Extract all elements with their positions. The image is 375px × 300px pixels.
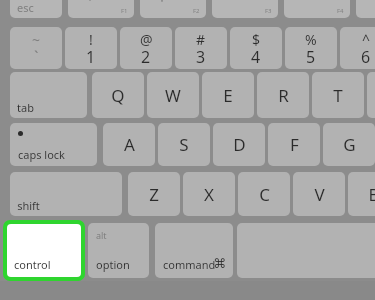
button[interactable]: V [293, 172, 345, 216]
staticText: shift [17, 198, 40, 213]
button[interactable]: F3 [212, 0, 278, 18]
button[interactable]: Shift [10, 172, 122, 216]
button[interactable]: S [158, 123, 210, 166]
staticText: ! [89, 30, 93, 49]
button[interactable]: esc [10, 0, 62, 18]
button[interactable]: X [183, 172, 235, 216]
button[interactable]: 2 key [120, 27, 172, 69]
staticText: $ [252, 30, 261, 49]
staticText: X [204, 183, 214, 206]
button[interactable]: E [202, 72, 254, 118]
button[interactable]: A [103, 123, 155, 166]
button[interactable]: 5 key [285, 27, 337, 69]
staticText: ~ [32, 30, 41, 49]
button[interactable]: F5 [356, 0, 375, 18]
staticText: tab [17, 100, 34, 115]
staticText: T [333, 84, 343, 107]
button[interactable]: 4 key [230, 27, 282, 69]
staticText: F3 [265, 7, 272, 15]
staticText: 3 [196, 46, 206, 68]
staticText: ` [34, 46, 39, 68]
staticText: A [124, 133, 135, 156]
button[interactable]: Q [92, 72, 144, 118]
staticText: D [233, 133, 246, 156]
button[interactable]: C [238, 172, 290, 216]
staticText: caps lock [18, 147, 65, 162]
button[interactable]: F [268, 123, 320, 166]
staticText: B [368, 183, 375, 206]
button[interactable]: Option key [88, 223, 149, 278]
button[interactable]: Control key highlighted [7, 224, 81, 277]
staticText: S [179, 133, 189, 156]
staticText: 6 [361, 46, 371, 68]
button[interactable]: Command key [155, 223, 233, 278]
button[interactable]: T [312, 72, 364, 118]
staticText: 2 [141, 46, 151, 68]
staticText: W [165, 84, 181, 107]
staticText: E [223, 84, 233, 107]
staticText: Q [111, 84, 125, 107]
button[interactable]: D [213, 123, 265, 166]
staticText: control [14, 257, 51, 272]
button[interactable]: R [257, 72, 309, 118]
staticText: F1 [121, 7, 128, 15]
staticText: esc [17, 0, 34, 15]
staticText: 1 [86, 46, 96, 68]
button[interactable]: 3 key [175, 27, 227, 69]
button[interactable]: Y [367, 72, 375, 118]
button[interactable]: B [348, 172, 375, 216]
staticText: option [96, 257, 130, 272]
staticText: 5 [306, 46, 316, 68]
staticText: R [278, 84, 289, 107]
staticText: V [314, 183, 325, 206]
staticText: % [305, 30, 317, 49]
button[interactable]: F2 [140, 0, 206, 18]
staticText: F [290, 133, 299, 156]
button[interactable]: Tab [10, 72, 87, 118]
button[interactable]: Caps lock [10, 123, 97, 166]
staticText: C [259, 183, 270, 206]
staticText: alt [96, 229, 107, 241]
button[interactable]: G [323, 123, 375, 166]
staticText: Z [149, 183, 159, 206]
staticText: G [343, 133, 356, 156]
button[interactable]: W [147, 72, 199, 118]
button[interactable]: F4 [284, 0, 350, 18]
staticText: # [196, 30, 206, 49]
button[interactable]: F1 [68, 0, 134, 18]
button[interactable]: 6 key [340, 27, 375, 69]
staticText: ^ [362, 30, 371, 49]
staticText: ⌘ [213, 256, 226, 271]
button[interactable]: Z [128, 172, 180, 216]
staticText: @ [140, 30, 153, 49]
staticText: 4 [251, 46, 261, 68]
staticText: F4 [337, 7, 344, 15]
staticText: F2 [193, 7, 200, 15]
button[interactable]: 1 key [65, 27, 117, 69]
button[interactable]: ` key [10, 27, 62, 69]
staticText: command [163, 257, 216, 272]
